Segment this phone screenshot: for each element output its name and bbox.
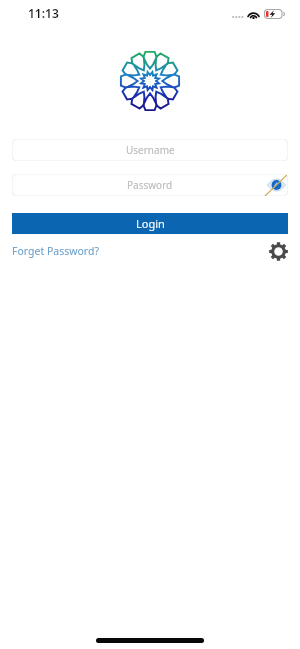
button[interactable]: Show password — [264, 174, 288, 196]
button[interactable]: Forget Password? — [12, 244, 99, 258]
button[interactable]: Password — [12, 174, 288, 196]
button[interactable]: Settings — [267, 240, 289, 262]
staticText: Login — [136, 216, 165, 231]
staticText: Password — [127, 178, 173, 192]
button[interactable]: Login — [12, 213, 288, 234]
staticText: Username — [126, 143, 175, 157]
staticText: 11:13 — [28, 5, 59, 21]
button[interactable]: Username — [12, 139, 288, 161]
